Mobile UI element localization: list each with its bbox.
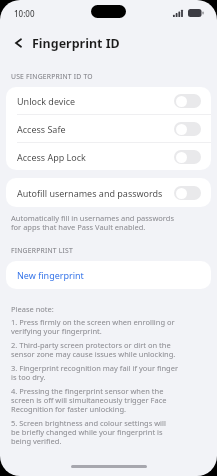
staticText: New fingerprint bbox=[17, 269, 84, 281]
button[interactable]: Access Safe bbox=[6, 115, 211, 142]
staticText: USE FINGERPRINT ID TO bbox=[11, 72, 93, 81]
button[interactable] bbox=[14, 38, 23, 48]
button[interactable]: New fingerprint bbox=[6, 261, 211, 289]
staticText: 3. Fingerprint recognition may fail if y… bbox=[11, 363, 179, 383]
staticText: Access App Lock bbox=[17, 151, 86, 163]
staticText: Please note: bbox=[11, 304, 54, 314]
button[interactable]: Unlock device bbox=[6, 87, 211, 114]
button[interactable] bbox=[174, 94, 201, 108]
staticText: Access Safe bbox=[17, 123, 66, 135]
staticText: 4. Pressing the fingerprint sensor when … bbox=[11, 386, 167, 415]
staticText: Unlock device bbox=[17, 95, 76, 107]
staticText: Autofill usernames and passwords bbox=[17, 187, 163, 199]
staticText: 1. Press firmly on the screen when enrol… bbox=[11, 317, 175, 337]
staticText: 10:00 bbox=[14, 8, 35, 19]
staticText: Fingerprint ID bbox=[32, 35, 120, 52]
button[interactable] bbox=[174, 122, 201, 136]
button[interactable]: Access App Lock bbox=[6, 143, 211, 170]
staticText: FINGERPRINT LIST bbox=[11, 246, 73, 255]
button[interactable] bbox=[174, 150, 201, 164]
staticText: 5. Screen brightness and colour settings… bbox=[11, 418, 166, 447]
button[interactable]: Autofill usernames and passwords bbox=[6, 178, 211, 207]
staticText: Automatically fill in usernames and pass… bbox=[11, 213, 175, 233]
button[interactable] bbox=[174, 186, 201, 200]
staticText: 2. Third-party screen protectors or dirt… bbox=[11, 340, 176, 360]
